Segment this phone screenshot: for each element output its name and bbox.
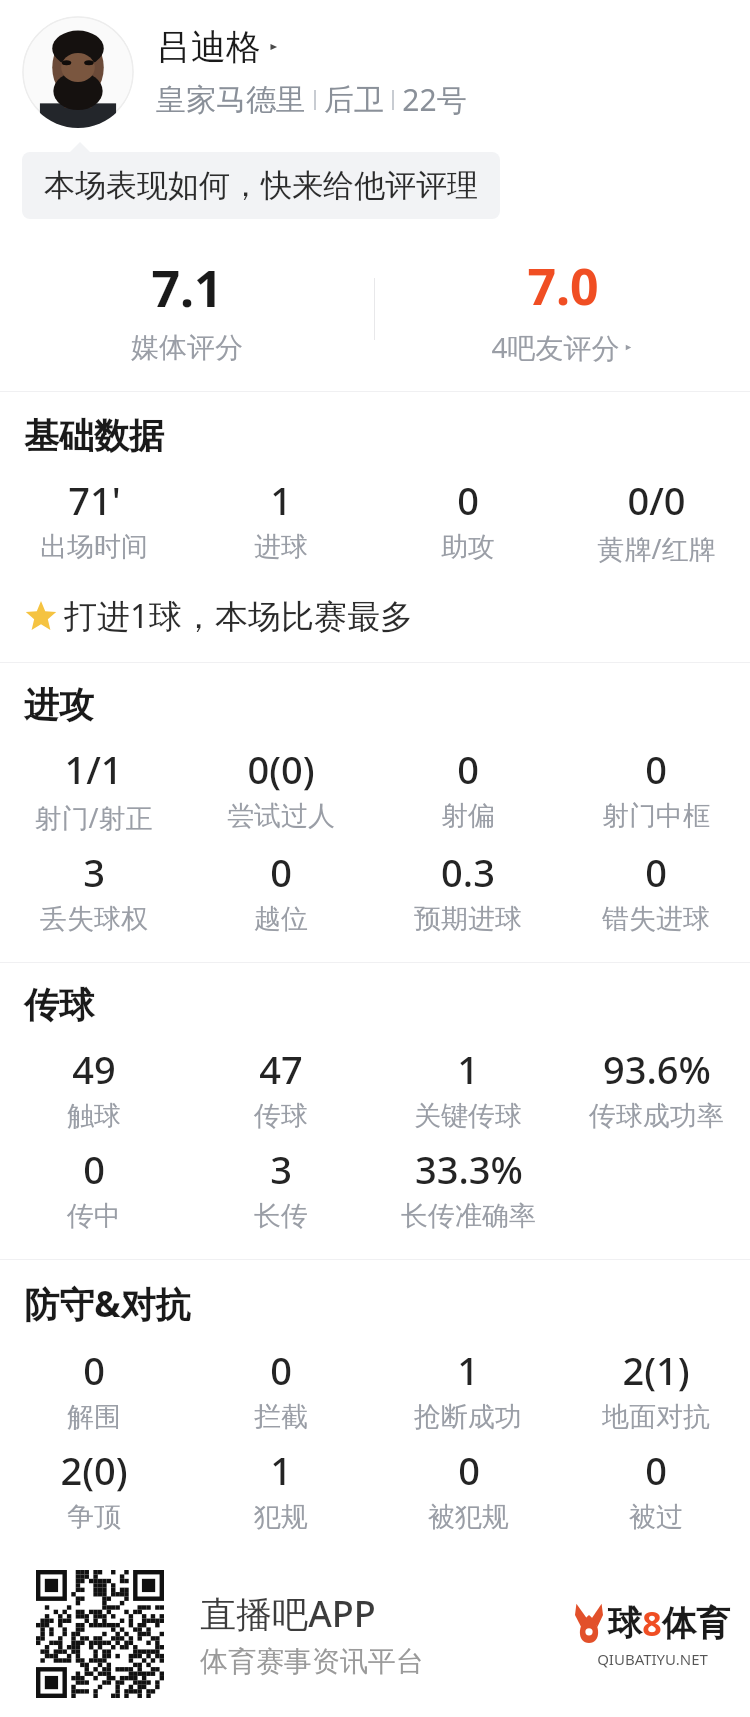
staticText: 7.0 (527, 252, 599, 320)
button[interactable]: 0 (0, 1143, 187, 1233)
staticText: QIUBATIYU.NET (597, 1649, 708, 1669)
staticText: 71' (68, 474, 121, 526)
staticText: 错失进球 (602, 902, 710, 936)
button[interactable]: 7.0 (375, 249, 750, 369)
staticText: 被犯规 (428, 1500, 509, 1534)
staticText: 争顶 (67, 1500, 121, 1534)
button[interactable]: 0 (562, 743, 750, 833)
staticText: 吕迪格 (156, 25, 261, 69)
staticText: 1 (270, 1444, 292, 1496)
staticText: 预期进球 (414, 902, 522, 936)
staticText: 0 (457, 474, 479, 526)
staticText: 被过 (629, 1500, 683, 1534)
staticText: 助攻 (441, 530, 495, 564)
staticText: 8 (642, 1600, 662, 1646)
staticText: 黄牌/红牌 (597, 530, 716, 567)
staticText: 0.3 (441, 846, 495, 898)
staticText: 2(1) (622, 1344, 690, 1396)
button[interactable]: 1 (187, 474, 374, 564)
staticText: 丢失球权 (40, 902, 148, 936)
staticText: 7.1 (151, 254, 223, 322)
button[interactable]: 1 (374, 1043, 562, 1133)
staticText: 进攻 (24, 683, 94, 727)
button[interactable]: 0 (562, 1444, 750, 1534)
staticText: 越位 (254, 902, 308, 936)
staticText: 0 (270, 1344, 292, 1396)
staticText: 后卫 (324, 81, 384, 119)
button[interactable]: 0 (187, 846, 374, 936)
staticText: 4吧友评分 (491, 328, 620, 366)
staticText: 1 (457, 1043, 479, 1095)
staticText: 传球成功率 (589, 1099, 724, 1133)
button[interactable]: 2(0) (0, 1444, 187, 1534)
staticText: 关键传球 (414, 1099, 522, 1133)
staticText: 0/0 (627, 474, 686, 526)
button[interactable]: 7.1 (0, 249, 374, 369)
button[interactable]: QR code (36, 1570, 164, 1698)
button[interactable]: 1 (187, 1444, 374, 1534)
staticText: 拦截 (254, 1400, 308, 1434)
staticText: 长传 (254, 1199, 308, 1233)
button[interactable]: 1/1 (0, 743, 187, 836)
button[interactable]: 吕迪格 (22, 16, 728, 128)
button[interactable]: 93.6% (562, 1043, 750, 1133)
button[interactable]: 49 (0, 1043, 187, 1133)
staticText: 0 (83, 1143, 105, 1195)
staticText: 出场时间 (40, 530, 148, 564)
staticText: 0 (457, 743, 479, 795)
button[interactable]: 0 (374, 1444, 562, 1534)
staticText: 1/1 (64, 743, 123, 795)
button[interactable]: 3 (0, 846, 187, 936)
button[interactable]: 0 (374, 474, 562, 564)
button[interactable]: 本场表现如何，快来给他评评理 (22, 152, 500, 219)
staticText: 3 (270, 1143, 292, 1195)
staticText: 直播吧APP (200, 1589, 376, 1638)
staticText: 基础数据 (24, 414, 164, 458)
staticText: 0 (645, 1444, 667, 1496)
button[interactable]: 71' (0, 474, 187, 564)
button[interactable]: 打进1球，本场比赛最多 (24, 593, 750, 638)
staticText: 0 (458, 1444, 480, 1496)
staticText: 33.3% (415, 1143, 523, 1195)
staticText: 传球 (254, 1099, 308, 1133)
button[interactable]: 0 (0, 1344, 187, 1434)
button[interactable]: 0/0 (562, 474, 750, 567)
staticText: 93.6% (603, 1043, 711, 1095)
staticText: 1 (457, 1344, 479, 1396)
staticText: 地面对抗 (602, 1400, 710, 1434)
staticText: 射门/射正 (34, 799, 153, 836)
button[interactable]: 33.3% (374, 1143, 562, 1233)
button[interactable]: 0 (374, 743, 562, 833)
staticText: 0(0) (247, 743, 315, 795)
staticText: 0 (270, 846, 292, 898)
staticText: 皇家马德里 (156, 81, 306, 119)
button[interactable]: 3 (187, 1143, 374, 1233)
staticText: 传中 (67, 1199, 121, 1233)
staticText: 长传准确率 (401, 1199, 536, 1233)
staticText: 体育 (662, 1602, 730, 1645)
staticText: 射偏 (441, 799, 495, 833)
staticText: 3 (83, 846, 105, 898)
staticText: 进球 (254, 530, 308, 564)
staticText: 2(0) (60, 1444, 128, 1496)
button[interactable]: 0 (562, 846, 750, 936)
button[interactable]: 0.3 (374, 846, 562, 936)
staticText: 尝试过人 (227, 799, 335, 833)
staticText: 抢断成功 (414, 1400, 522, 1434)
button[interactable]: 0(0) (187, 743, 374, 833)
staticText: 打进1球，本场比赛最多 (64, 593, 413, 638)
staticText: 传球 (24, 983, 94, 1027)
button[interactable]: 2(1) (562, 1344, 750, 1434)
staticText: 防守&对抗 (24, 1280, 191, 1328)
staticText: 解围 (67, 1400, 121, 1434)
staticText: 22号 (402, 79, 467, 120)
button[interactable]: 47 (187, 1043, 374, 1133)
staticText: 本场表现如何，快来给他评评理 (44, 166, 478, 205)
staticText: 射门中框 (602, 799, 710, 833)
button[interactable]: 1 (374, 1344, 562, 1434)
staticText: 1 (270, 474, 292, 526)
staticText: 触球 (67, 1099, 121, 1133)
staticText: 0 (83, 1344, 105, 1396)
staticText: 体育赛事资讯平台 (200, 1644, 424, 1679)
button[interactable]: 0 (187, 1344, 374, 1434)
